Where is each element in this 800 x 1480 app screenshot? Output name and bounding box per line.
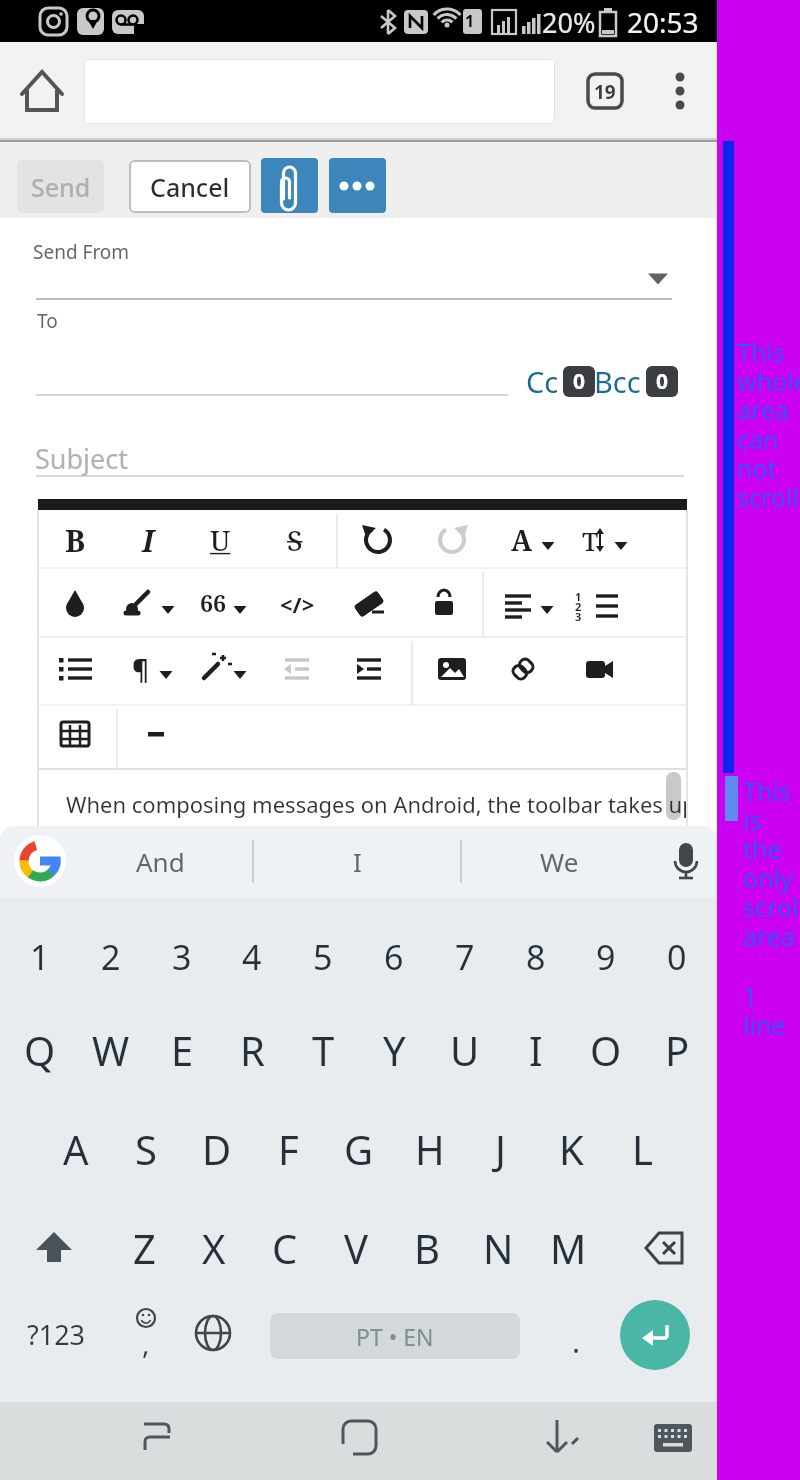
button[interactable]: 5 [283,925,363,989]
button[interactable] [660,68,700,114]
button[interactable] [620,1300,690,1370]
staticText: B [65,520,86,561]
button[interactable] [520,1410,600,1466]
staticText: PT • EN [356,1321,434,1352]
button[interactable]: 7 [425,925,505,989]
button[interactable] [186,1306,240,1360]
button[interactable]: 1 [0,925,80,989]
button[interactable]: N [455,1213,541,1283]
button[interactable]: Bcc [551,352,684,411]
button[interactable] [84,59,555,124]
staticText: Send From [33,239,130,265]
staticText: Bcc [594,362,641,401]
staticText: K [559,1122,584,1176]
button[interactable]: F [245,1114,331,1184]
button[interactable]: B [37,510,113,570]
button[interactable] [120,1410,200,1466]
button[interactable]: 6 [354,925,434,989]
staticText: A [511,521,533,559]
button[interactable]: A [485,511,559,569]
button[interactable]: C [242,1213,328,1283]
button[interactable]: Cc [490,352,594,411]
button[interactable]: 4 [212,925,292,989]
button[interactable]: . [538,1311,614,1371]
button[interactable]: ?123 [0,1306,133,1363]
staticText: We [540,844,579,879]
staticText: 8 [526,934,546,980]
staticText: F [278,1122,299,1176]
button[interactable]: A [33,1114,119,1184]
staticText: Cc [526,362,559,401]
staticText: N [483,1221,514,1275]
button[interactable]: 2 [71,925,151,989]
button[interactable]: ¶ [104,641,176,697]
button[interactable]: We [510,833,608,889]
button[interactable]: 66 [167,576,259,629]
button[interactable]: , [109,1314,183,1372]
staticText: 66 [200,587,226,618]
staticText: 1 line [743,979,786,1042]
button[interactable]: M [525,1213,611,1283]
button[interactable]: T [554,512,626,568]
button[interactable]: 9 [566,925,646,989]
button[interactable] [636,262,680,296]
button[interactable]: 8 [496,925,576,989]
staticText: </> [280,589,315,619]
staticText: C [272,1221,298,1275]
button[interactable]: Q [0,1015,83,1085]
button[interactable]: I [321,833,393,889]
staticText: 5 [313,934,333,980]
button[interactable]: J [457,1114,543,1184]
button[interactable] [644,1412,700,1464]
button[interactable]: P [634,1015,720,1085]
staticText: S [287,521,303,559]
button[interactable]: O [563,1015,649,1085]
button[interactable]: Y [351,1015,437,1085]
button[interactable]: G [316,1114,402,1184]
staticText: A [63,1122,89,1176]
button[interactable]: 0 [563,366,595,397]
button[interactable]: Z [101,1213,187,1283]
button[interactable]: V [313,1213,399,1283]
button[interactable] [329,158,386,213]
staticText: Y [383,1023,406,1077]
staticText: ¶ [132,652,149,687]
button[interactable]: L [599,1114,685,1184]
button[interactable]: S [258,511,332,569]
button[interactable]: I [493,1015,579,1085]
button[interactable]: 19 [563,67,647,116]
button[interactable]: W [68,1015,154,1085]
button[interactable] [20,68,66,114]
button[interactable] [118,1304,174,1364]
staticText: , [142,1324,150,1362]
staticText: S [135,1122,157,1176]
button[interactable]: S [103,1114,189,1184]
button[interactable]: T [280,1015,366,1085]
button[interactable] [26,1222,82,1274]
button[interactable]: U [183,511,257,569]
button[interactable]: X [171,1213,257,1283]
button[interactable]: R [209,1015,295,1085]
button[interactable]: 0 [646,366,678,397]
button[interactable]: B [384,1213,470,1283]
button[interactable]: 0 [637,925,717,989]
button[interactable]: E [139,1015,225,1085]
button[interactable] [14,835,66,887]
button[interactable]: U [422,1015,508,1085]
button[interactable] [633,1222,689,1274]
button[interactable]: Send [17,160,104,213]
button[interactable]: 3 [142,925,222,989]
button[interactable] [320,1410,400,1466]
staticText: P [665,1023,690,1077]
button[interactable]: H [387,1114,473,1184]
button[interactable]: Cancel [129,160,251,213]
button[interactable] [261,158,318,213]
button[interactable]: </> [241,578,353,630]
button[interactable]: K [528,1114,614,1184]
button[interactable]: I [110,510,186,570]
staticText: U [210,521,231,559]
button[interactable] [660,835,712,887]
button[interactable]: And [98,833,222,889]
button[interactable]: D [174,1114,260,1184]
button[interactable]: PT • EN [270,1313,520,1359]
